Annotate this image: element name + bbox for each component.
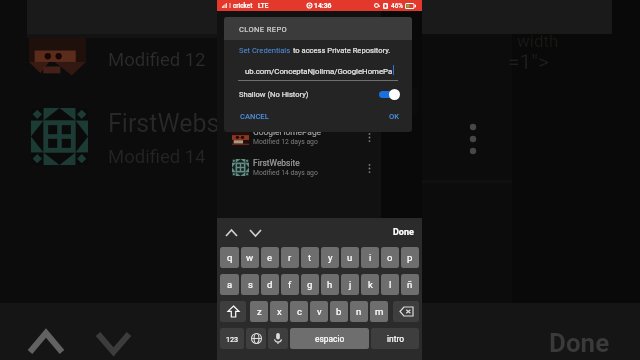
button[interactable]: Done: [393, 227, 414, 238]
button[interactable]: z: [250, 301, 268, 322]
button[interactable]: p: [401, 247, 419, 268]
button[interactable]: Voice input: [268, 328, 288, 349]
staticText: z: [257, 306, 262, 317]
button[interactable]: b: [330, 301, 348, 322]
button[interactable]: n: [350, 301, 368, 322]
staticText: m: [375, 306, 384, 317]
staticText: 14:36: [314, 2, 332, 10]
staticText: x: [277, 306, 282, 317]
button[interactable]: l: [381, 274, 399, 295]
button[interactable]: e: [261, 247, 279, 268]
staticText: Done: [549, 328, 610, 358]
staticText: i: [369, 252, 372, 263]
button[interactable]: g: [301, 274, 319, 295]
button[interactable]: More options: [362, 161, 376, 175]
staticText: 123: [226, 335, 239, 343]
staticText: s: [248, 279, 253, 290]
staticText: Shallow (No History): [239, 90, 309, 99]
staticText: GoogleHomePage: [253, 127, 322, 137]
staticText: ñ: [407, 279, 413, 290]
staticText: q: [227, 252, 233, 263]
staticText: Modified 12: [108, 49, 206, 71]
button[interactable]: espacio: [290, 328, 369, 349]
staticText: j: [349, 279, 352, 290]
staticText: Modified 14: [108, 146, 206, 168]
button[interactable]: w: [241, 247, 259, 268]
staticText: CLONE REPO: [239, 25, 288, 34]
button[interactable]: OK: [389, 112, 400, 121]
staticText: k: [368, 279, 373, 290]
button[interactable]: GoogleHomePage: [217, 121, 381, 152]
staticText: Modified 12 days ago: [253, 138, 318, 146]
staticText: c: [297, 306, 302, 317]
staticText: espacio: [315, 334, 345, 344]
button[interactable]: f: [281, 274, 299, 295]
staticText: FirstWebsite: [253, 158, 300, 168]
button[interactable]: k: [361, 274, 379, 295]
button[interactable]: y: [321, 247, 339, 268]
button[interactable]: ñ: [401, 274, 419, 295]
button[interactable]: Shift: [220, 301, 246, 322]
staticText: t: [308, 252, 312, 263]
staticText: Modified 14 days ago: [253, 169, 318, 177]
button[interactable]: CANCEL: [240, 112, 269, 121]
staticText: intro: [387, 334, 404, 344]
button[interactable]: 123: [220, 328, 244, 349]
button[interactable]: d: [261, 274, 279, 295]
staticText: f: [288, 279, 292, 290]
staticText: p: [407, 252, 413, 263]
button[interactable]: v: [310, 301, 328, 322]
button[interactable]: q: [220, 247, 239, 268]
button[interactable]: a: [220, 274, 239, 295]
staticText: y: [328, 252, 333, 263]
button[interactable]: i: [361, 247, 379, 268]
staticText: l: [389, 279, 392, 290]
staticText: h: [327, 279, 333, 290]
button[interactable]: j: [341, 274, 359, 295]
button[interactable]: c: [290, 301, 308, 322]
staticText: u: [347, 252, 353, 263]
staticText: FirstWebs: [108, 109, 220, 138]
staticText: Set Credentials: [239, 46, 291, 55]
staticText: cricket: [233, 2, 253, 10]
staticText: =1">: [508, 50, 550, 75]
staticText: o: [387, 252, 393, 263]
button[interactable]: s: [241, 274, 259, 295]
staticText: e: [267, 252, 273, 263]
staticText: to access Private Repository.: [291, 46, 391, 55]
button[interactable]: h: [321, 274, 339, 295]
staticText: w: [246, 252, 254, 263]
button[interactable]: u: [341, 247, 359, 268]
staticText: width: [517, 31, 559, 51]
staticText: ub.com/ConceptaNjolima/GoogleHomePa: [245, 67, 393, 76]
button[interactable]: FirstWebsite: [217, 152, 381, 183]
staticText: =1">: [384, 33, 397, 41]
button[interactable]: r: [281, 247, 299, 268]
button[interactable]: m: [370, 301, 388, 322]
button[interactable]: Backspace: [393, 301, 419, 322]
button[interactable]: More options: [362, 130, 376, 144]
button[interactable]: x: [270, 301, 288, 322]
staticText: r: [288, 252, 292, 263]
staticText: d: [267, 279, 273, 290]
button[interactable]: intro: [371, 328, 419, 349]
staticText: 46%: [391, 2, 403, 10]
button[interactable]: Previous field: [222, 224, 240, 242]
button[interactable]: t: [301, 247, 319, 268]
staticText: v: [317, 306, 322, 317]
button[interactable]: Shallow (No History): [224, 87, 412, 101]
button[interactable]: Next field: [246, 224, 264, 242]
staticText: b: [336, 306, 342, 317]
staticText: a: [227, 279, 233, 290]
button[interactable]: Change language: [246, 328, 266, 349]
staticText: g: [307, 279, 313, 290]
staticText: n: [356, 306, 362, 317]
button[interactable]: o: [381, 247, 399, 268]
staticText: LTE: [258, 2, 269, 10]
